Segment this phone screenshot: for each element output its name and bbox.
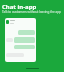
button[interactable]: [14, 37, 35, 43]
staticText: Talk to customers without leaving the ap…: [2, 10, 61, 14]
button[interactable]: [14, 45, 35, 49]
button[interactable]: [18, 30, 35, 35]
button[interactable]: [5, 18, 36, 62]
staticText: Chat in-app: [2, 3, 37, 11]
